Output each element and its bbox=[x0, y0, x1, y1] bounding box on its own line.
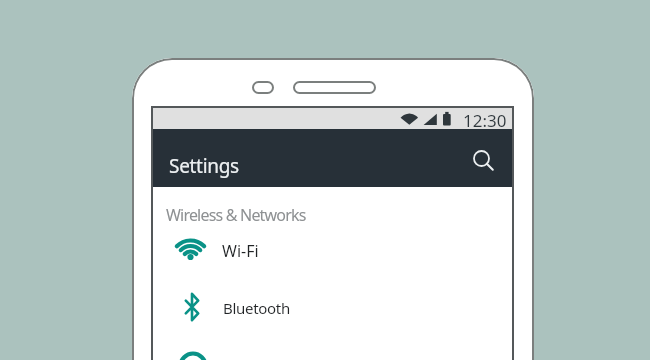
staticText: Bluetooth bbox=[223, 298, 290, 318]
button[interactable]: Wi-Fi bbox=[166, 232, 496, 270]
staticText: 12:30 bbox=[463, 109, 507, 132]
staticText: Wi-Fi bbox=[222, 240, 259, 262]
staticText: Settings bbox=[169, 153, 239, 179]
button[interactable] bbox=[468, 144, 498, 174]
button[interactable]: Bluetooth bbox=[166, 290, 496, 328]
button[interactable] bbox=[151, 129, 514, 187]
staticText: Wireless & Networks bbox=[166, 204, 306, 226]
